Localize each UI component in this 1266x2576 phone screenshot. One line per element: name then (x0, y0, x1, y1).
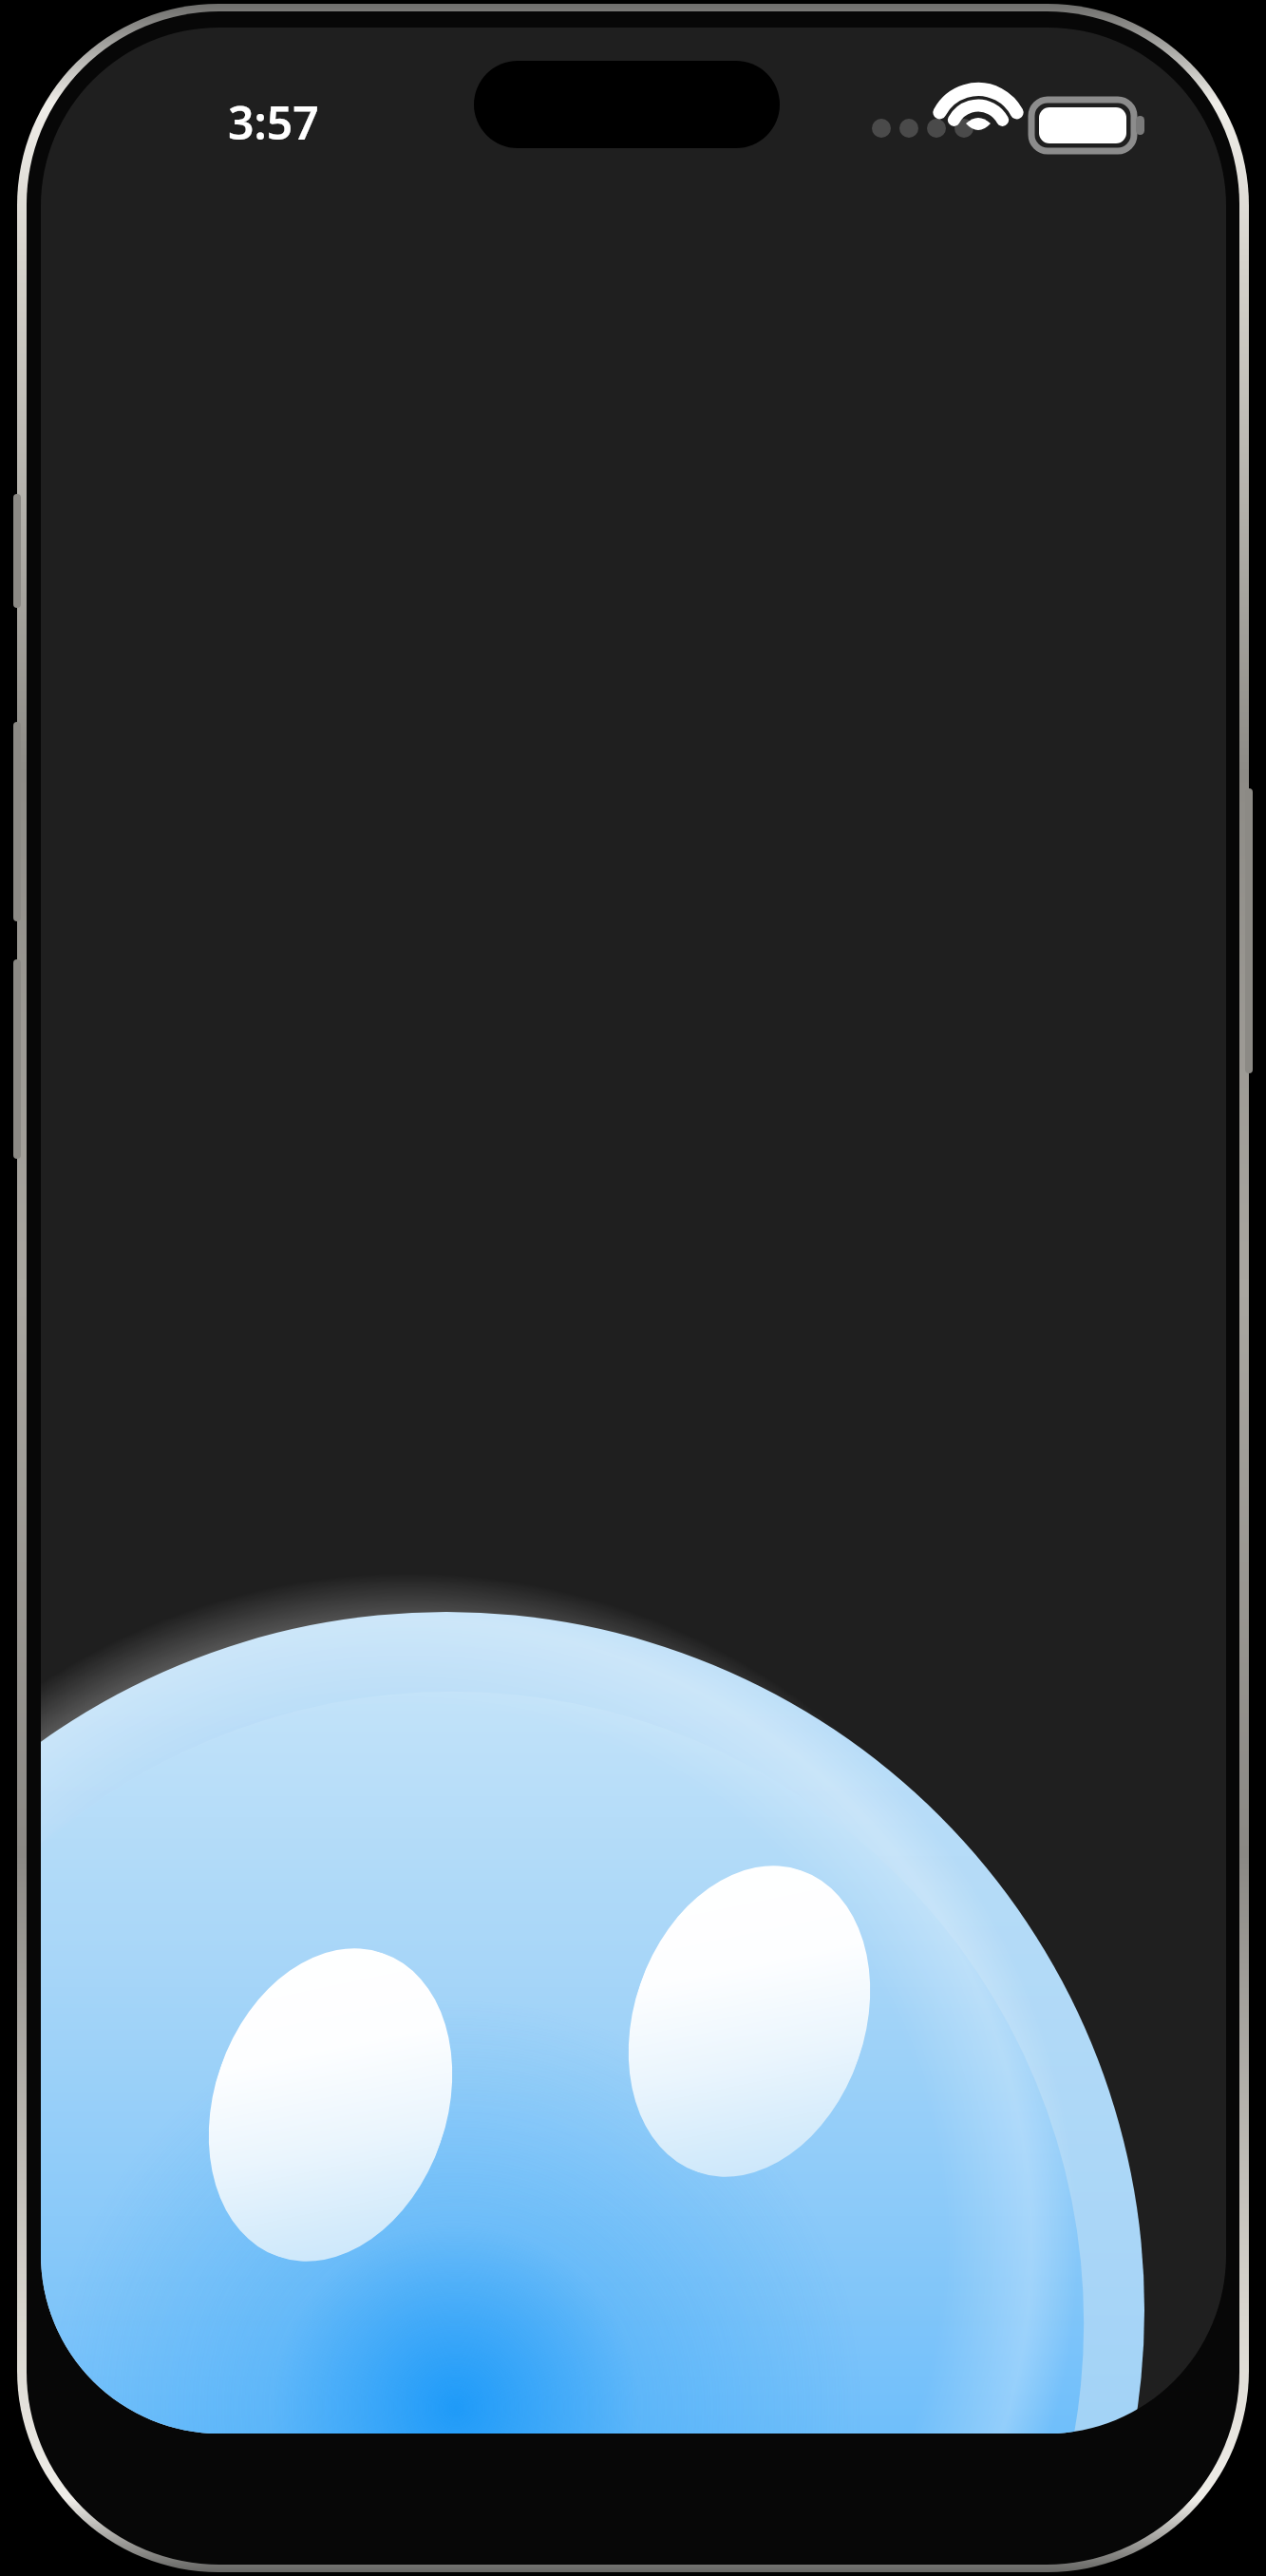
button[interactable]: Loading animation (0, 0, 1266, 2576)
